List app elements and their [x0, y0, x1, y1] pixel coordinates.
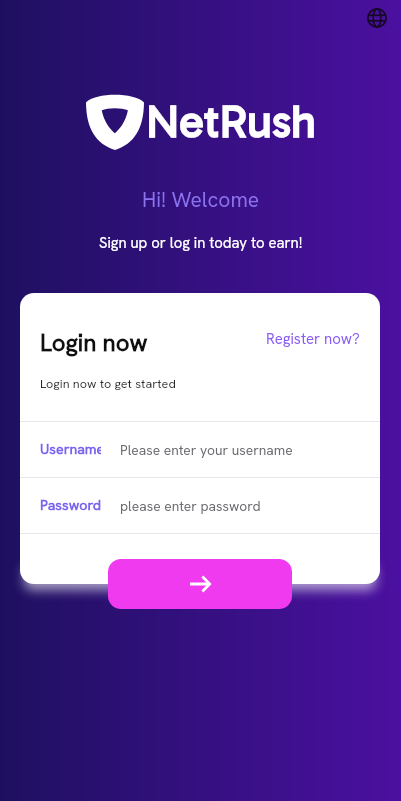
staticText: Register now?	[266, 329, 360, 349]
button[interactable]: Change language	[362, 3, 391, 32]
button[interactable]: Password	[20, 478, 380, 533]
staticText: Password	[40, 496, 101, 515]
staticText: Login now	[40, 327, 148, 358]
button[interactable]: Username	[20, 422, 380, 477]
staticText: Please enter your username	[120, 441, 293, 459]
staticText: please enter password	[120, 497, 261, 515]
staticText: Login now to get started	[40, 375, 176, 391]
staticText: Hi! Welcome	[142, 186, 260, 213]
staticText: Sign up or log in today to earn!	[99, 233, 303, 252]
button[interactable]: Continue	[108, 559, 292, 609]
button[interactable]: Register now?	[266, 329, 360, 349]
staticText: NetRush	[146, 95, 316, 149]
staticText: Username	[40, 440, 101, 459]
